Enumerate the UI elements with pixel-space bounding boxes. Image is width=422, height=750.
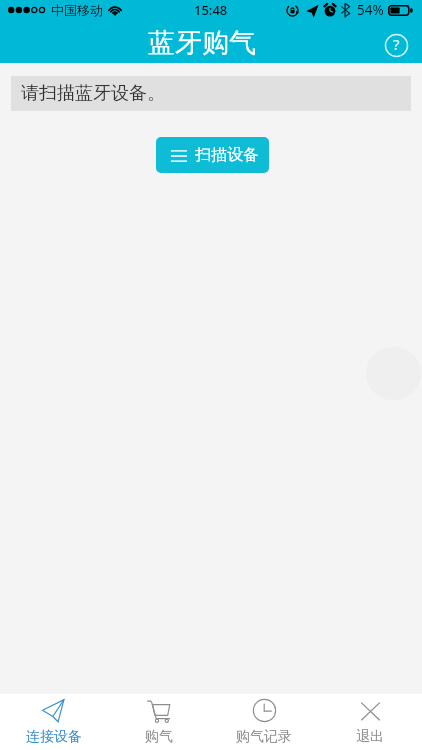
staticText: 蓝牙购气 [148, 26, 256, 60]
staticText: 15:48 [194, 1, 228, 19]
staticText: 请扫描蓝牙设备。 [21, 82, 165, 105]
staticText: 购气 [145, 728, 173, 746]
staticText: 购气记录 [236, 728, 292, 746]
button[interactable]: 扫描设备 [156, 137, 269, 173]
staticText: 连接设备 [26, 728, 82, 746]
staticText: 54% [357, 1, 384, 19]
button[interactable]: 退出 [316, 694, 422, 750]
staticText: 中国移动 [51, 2, 103, 18]
staticText: 扫描设备 [195, 145, 259, 165]
button[interactable]: 购气记录 [210, 694, 316, 750]
button[interactable]: Help [380, 29, 412, 61]
button[interactable]: 购气 [105, 694, 210, 750]
staticText: 退出 [356, 728, 384, 746]
staticText: ? [393, 34, 400, 54]
button[interactable]: 连接设备 [0, 694, 105, 750]
